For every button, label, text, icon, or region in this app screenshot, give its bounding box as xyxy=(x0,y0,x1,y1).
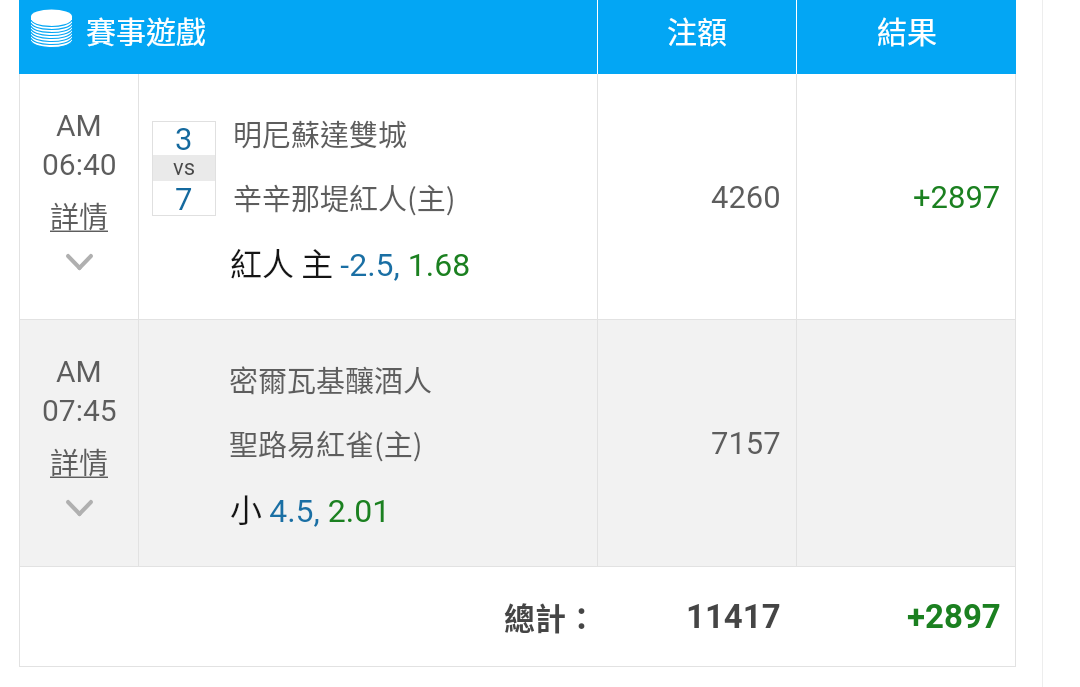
staticText: AM xyxy=(56,108,102,143)
staticText: 小 4.5, 2.01 xyxy=(230,485,391,531)
staticText: 紅人 主 -2.5, 1.68 xyxy=(230,239,471,285)
staticText: 7157 xyxy=(711,425,781,461)
staticText: vs xyxy=(173,155,196,181)
button[interactable]: 密爾瓦基釀酒人 xyxy=(139,320,597,566)
staticText: 3 xyxy=(175,121,193,155)
other: Expand details xyxy=(66,254,93,270)
staticText: 總計： xyxy=(504,594,597,639)
other: Expand details xyxy=(66,500,93,516)
staticText: 結果 xyxy=(877,8,937,51)
staticText: +2897 xyxy=(913,179,1001,215)
staticText: 聖路易紅雀(主) xyxy=(229,422,423,464)
staticText: 明尼蘇達雙城 xyxy=(233,112,408,154)
staticText: 詳情 xyxy=(50,194,109,236)
staticText: 注額 xyxy=(667,8,727,51)
staticText: 06:40 xyxy=(42,147,117,182)
staticText: 4260 xyxy=(711,179,781,215)
staticText: AM xyxy=(56,354,102,389)
staticText: 辛辛那堤紅人(主) xyxy=(233,176,456,218)
staticText: 7 xyxy=(175,181,193,216)
button[interactable]: Coins xyxy=(31,0,597,74)
other: Coins xyxy=(31,9,72,48)
button[interactable]: 詳情 xyxy=(20,194,138,270)
button[interactable]: 3 xyxy=(139,74,597,319)
staticText: 詳情 xyxy=(50,440,109,482)
staticText: 11417 xyxy=(686,597,781,636)
staticText: 賽事遊戲 xyxy=(86,8,206,51)
button[interactable]: 詳情 xyxy=(20,440,138,516)
staticText: +2897 xyxy=(907,597,1001,636)
staticText: 07:45 xyxy=(42,393,117,428)
staticText: 密爾瓦基釀酒人 xyxy=(229,358,433,400)
